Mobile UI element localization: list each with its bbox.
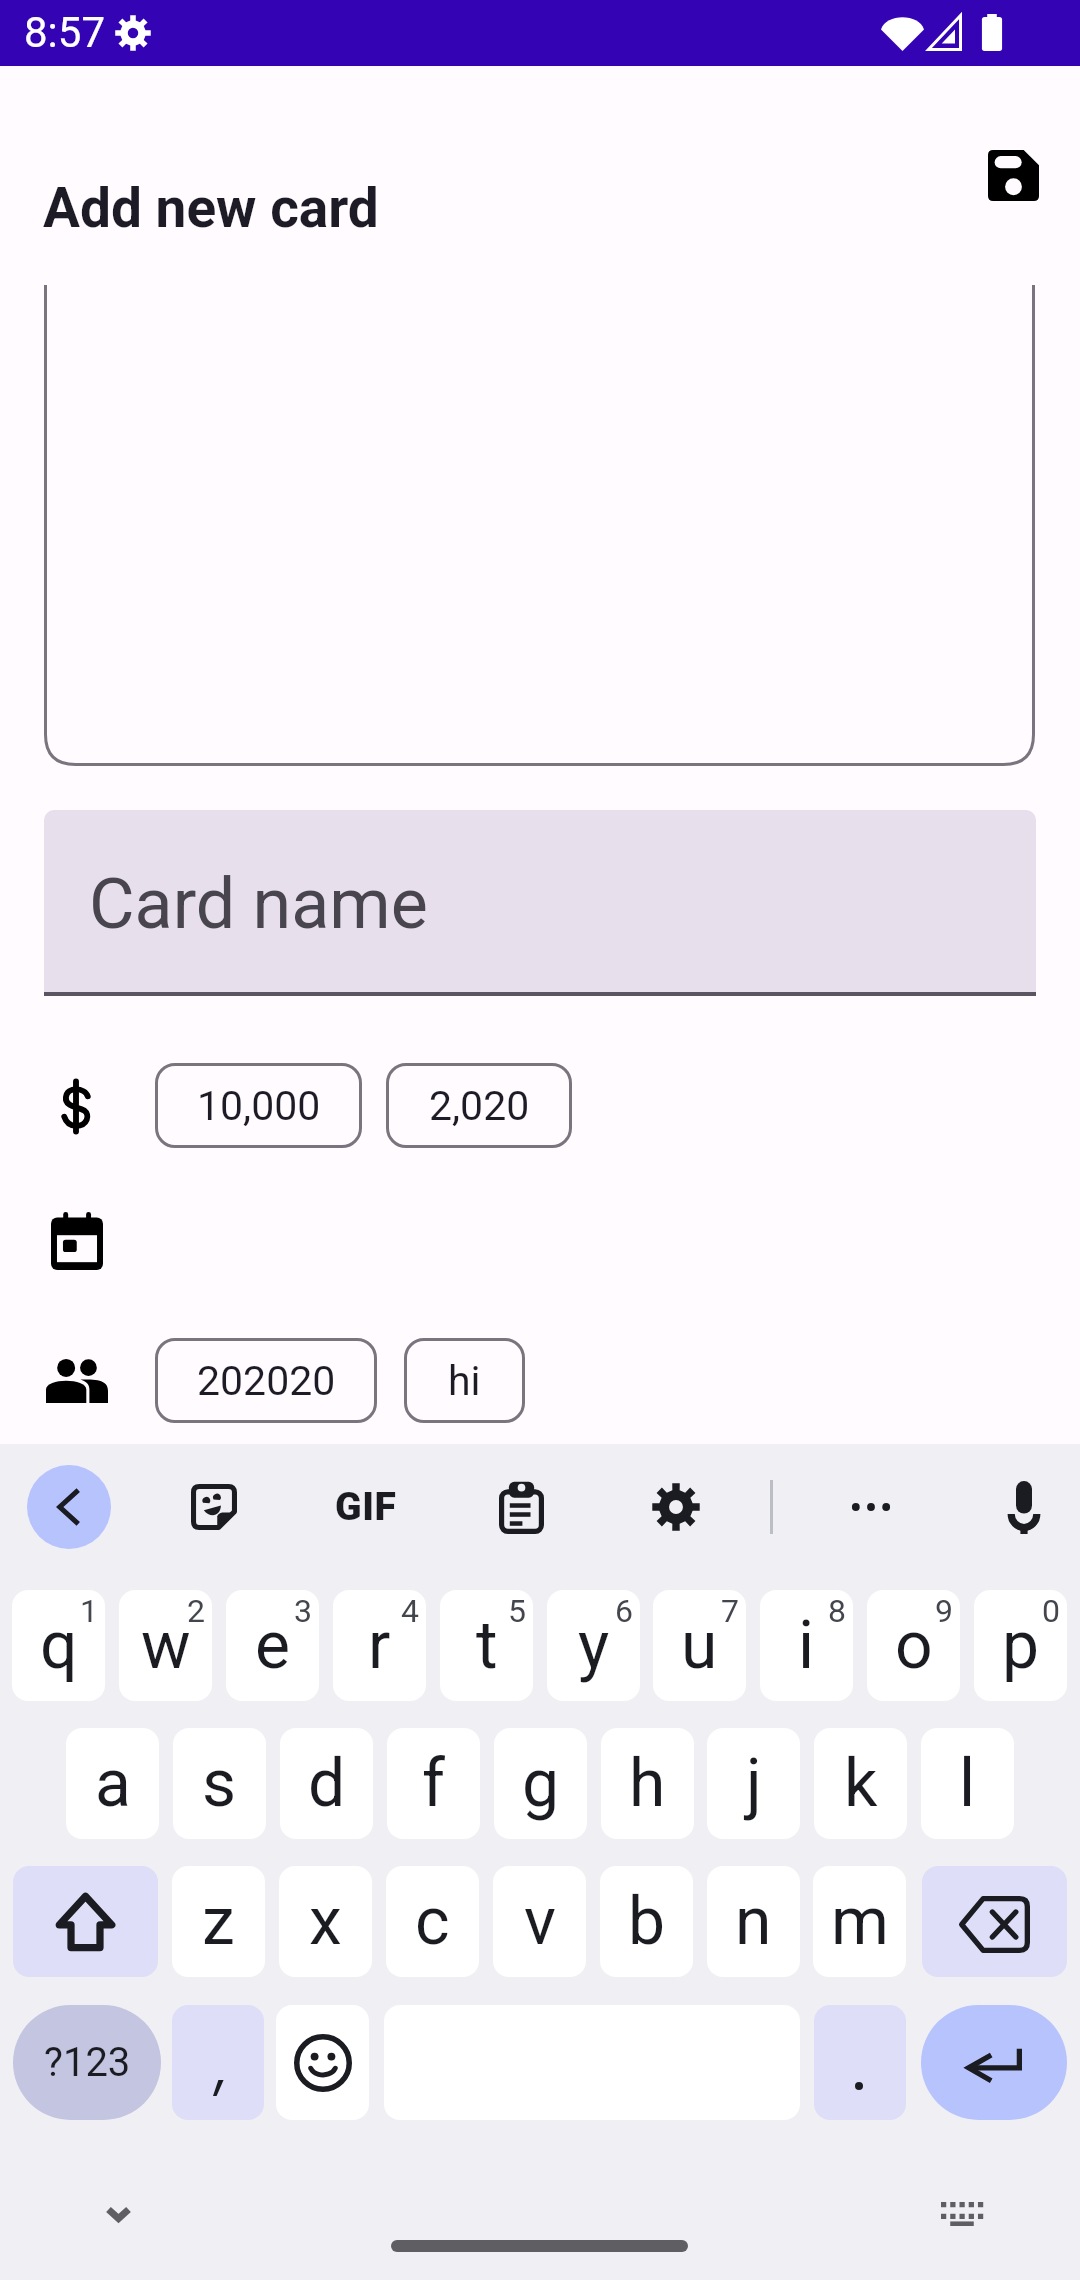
button[interactable]: Period — [814, 2005, 906, 2120]
button[interactable]: a — [66, 1728, 159, 1839]
staticText: 10,000 — [197, 1082, 321, 1130]
button[interactable]: Save — [965, 127, 1061, 223]
button[interactable]: s — [173, 1728, 266, 1839]
staticText: k — [844, 1745, 878, 1822]
button[interactable]: hi — [404, 1338, 525, 1423]
staticText: 1 — [80, 1592, 98, 1630]
button[interactable]: x — [279, 1866, 372, 1977]
button[interactable]: h — [601, 1728, 694, 1839]
button[interactable]: w — [119, 1590, 212, 1701]
staticText: m — [831, 1883, 889, 1960]
staticText: z — [202, 1883, 235, 1960]
staticText: 0 — [1042, 1592, 1060, 1630]
button[interactable]: o — [867, 1590, 960, 1701]
button[interactable]: g — [494, 1728, 587, 1839]
staticText: q — [40, 1607, 78, 1684]
button[interactable]: Emoji — [276, 2005, 369, 2120]
button[interactable]: 10,000 — [155, 1063, 362, 1148]
staticText: d — [308, 1745, 346, 1822]
staticText: 4 — [401, 1592, 419, 1630]
button[interactable]: Clipboard — [485, 1471, 557, 1543]
button[interactable]: t — [440, 1590, 533, 1701]
staticText: l — [959, 1745, 976, 1822]
button[interactable]: Shift — [13, 1866, 158, 1977]
button[interactable]: e — [226, 1590, 319, 1701]
staticText: t — [476, 1607, 498, 1684]
staticText: f — [422, 1745, 445, 1822]
button[interactable]: r — [333, 1590, 426, 1701]
button[interactable]: Hide keyboard — [88, 2184, 148, 2244]
button[interactable]: Enter — [921, 2005, 1067, 2120]
button[interactable]: Stickers — [178, 1471, 250, 1543]
staticText: j — [746, 1745, 762, 1822]
button[interactable]: p — [974, 1590, 1067, 1701]
button[interactable]: n — [707, 1866, 800, 1977]
button[interactable]: Switch keyboard — [932, 2184, 992, 2244]
button[interactable]: Settings — [640, 1471, 712, 1543]
staticText: c — [415, 1883, 450, 1960]
button[interactable]: k — [814, 1728, 907, 1839]
staticText: e — [255, 1607, 290, 1684]
button[interactable]: GIF — [330, 1477, 402, 1537]
button[interactable] — [44, 285, 1035, 766]
button[interactable]: 202020 — [155, 1338, 377, 1423]
staticText: Add new card — [43, 176, 379, 240]
button[interactable]: Back — [27, 1465, 111, 1549]
staticText: 8 — [828, 1592, 846, 1630]
staticText: p — [1002, 1607, 1040, 1684]
staticText: 9 — [935, 1592, 953, 1630]
button[interactable]: c — [386, 1866, 479, 1977]
button[interactable]: y — [547, 1590, 640, 1701]
staticText: o — [895, 1607, 933, 1684]
button[interactable]: d — [280, 1728, 373, 1839]
button[interactable]: Card name — [44, 810, 1036, 993]
staticText: ?123 — [44, 2039, 131, 2086]
button[interactable]: u — [653, 1590, 746, 1701]
button[interactable]: Backspace — [922, 1866, 1067, 1977]
button[interactable]: i — [760, 1590, 853, 1701]
button[interactable]: v — [493, 1866, 586, 1977]
staticText: v — [524, 1883, 556, 1960]
staticText: x — [309, 1883, 342, 1960]
staticText: g — [522, 1745, 560, 1822]
staticText: 8:57 — [24, 8, 105, 57]
button[interactable]: z — [172, 1866, 265, 1977]
button[interactable]: Voice input — [988, 1471, 1060, 1543]
staticText: a — [95, 1745, 131, 1822]
button[interactable]: m — [813, 1866, 906, 1977]
staticText: r — [368, 1607, 391, 1684]
staticText: 202020 — [197, 1357, 336, 1405]
button[interactable]: l — [921, 1728, 1014, 1839]
button[interactable]: ?123 — [13, 2005, 161, 2120]
staticText: 2,020 — [429, 1082, 530, 1130]
staticText: w — [141, 1607, 191, 1684]
staticText: 5 — [508, 1592, 526, 1630]
staticText: 6 — [615, 1592, 633, 1630]
button[interactable]: More options — [835, 1471, 907, 1543]
staticText: s — [202, 1745, 237, 1822]
staticText: n — [735, 1883, 772, 1960]
staticText: u — [681, 1607, 718, 1684]
button[interactable]: f — [387, 1728, 480, 1839]
staticText: Card name — [89, 863, 428, 945]
button[interactable]: 2,020 — [386, 1063, 572, 1148]
staticText: 7 — [721, 1592, 739, 1630]
staticText: 2 — [187, 1592, 205, 1630]
staticText: hi — [448, 1357, 481, 1405]
staticText: h — [629, 1745, 666, 1822]
staticText: 3 — [294, 1592, 312, 1630]
button[interactable]: b — [600, 1866, 693, 1977]
staticText: y — [578, 1607, 610, 1684]
button[interactable]: j — [707, 1728, 800, 1839]
button[interactable]: Comma — [172, 2005, 264, 2120]
staticText: b — [628, 1883, 666, 1960]
staticText: i — [798, 1607, 815, 1684]
button[interactable]: q — [12, 1590, 105, 1701]
staticText: GIF — [335, 1484, 397, 1530]
